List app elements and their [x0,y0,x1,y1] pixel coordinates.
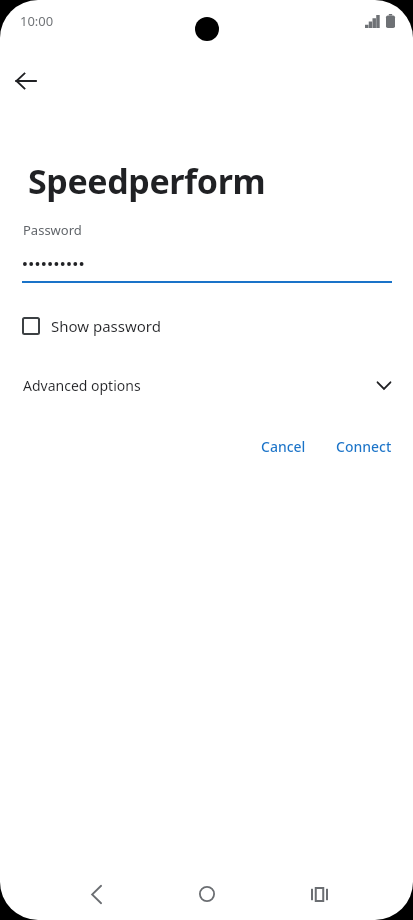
button[interactable] [0,251,413,283]
button[interactable]: Back [75,873,117,915]
staticText: Speedperform [28,158,266,204]
staticText: Advanced options [23,376,141,395]
staticText: 10:00 [20,12,54,30]
button[interactable]: Advanced options [0,366,413,404]
button[interactable]: Back [6,61,46,101]
staticText: Connect [336,437,392,456]
button[interactable]: Show password [0,309,413,343]
button[interactable]: Home [186,873,228,915]
button[interactable]: Cancel [252,430,315,463]
button[interactable]: Connect [327,430,401,463]
staticText: Show password [51,316,161,336]
staticText: Password [23,221,82,239]
staticText: Cancel [261,437,306,456]
button[interactable]: Recent apps [298,873,340,915]
